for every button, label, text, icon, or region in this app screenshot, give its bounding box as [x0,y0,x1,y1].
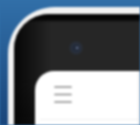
other: Menu [55,87,71,102]
button[interactable]: Menu [35,71,140,125]
